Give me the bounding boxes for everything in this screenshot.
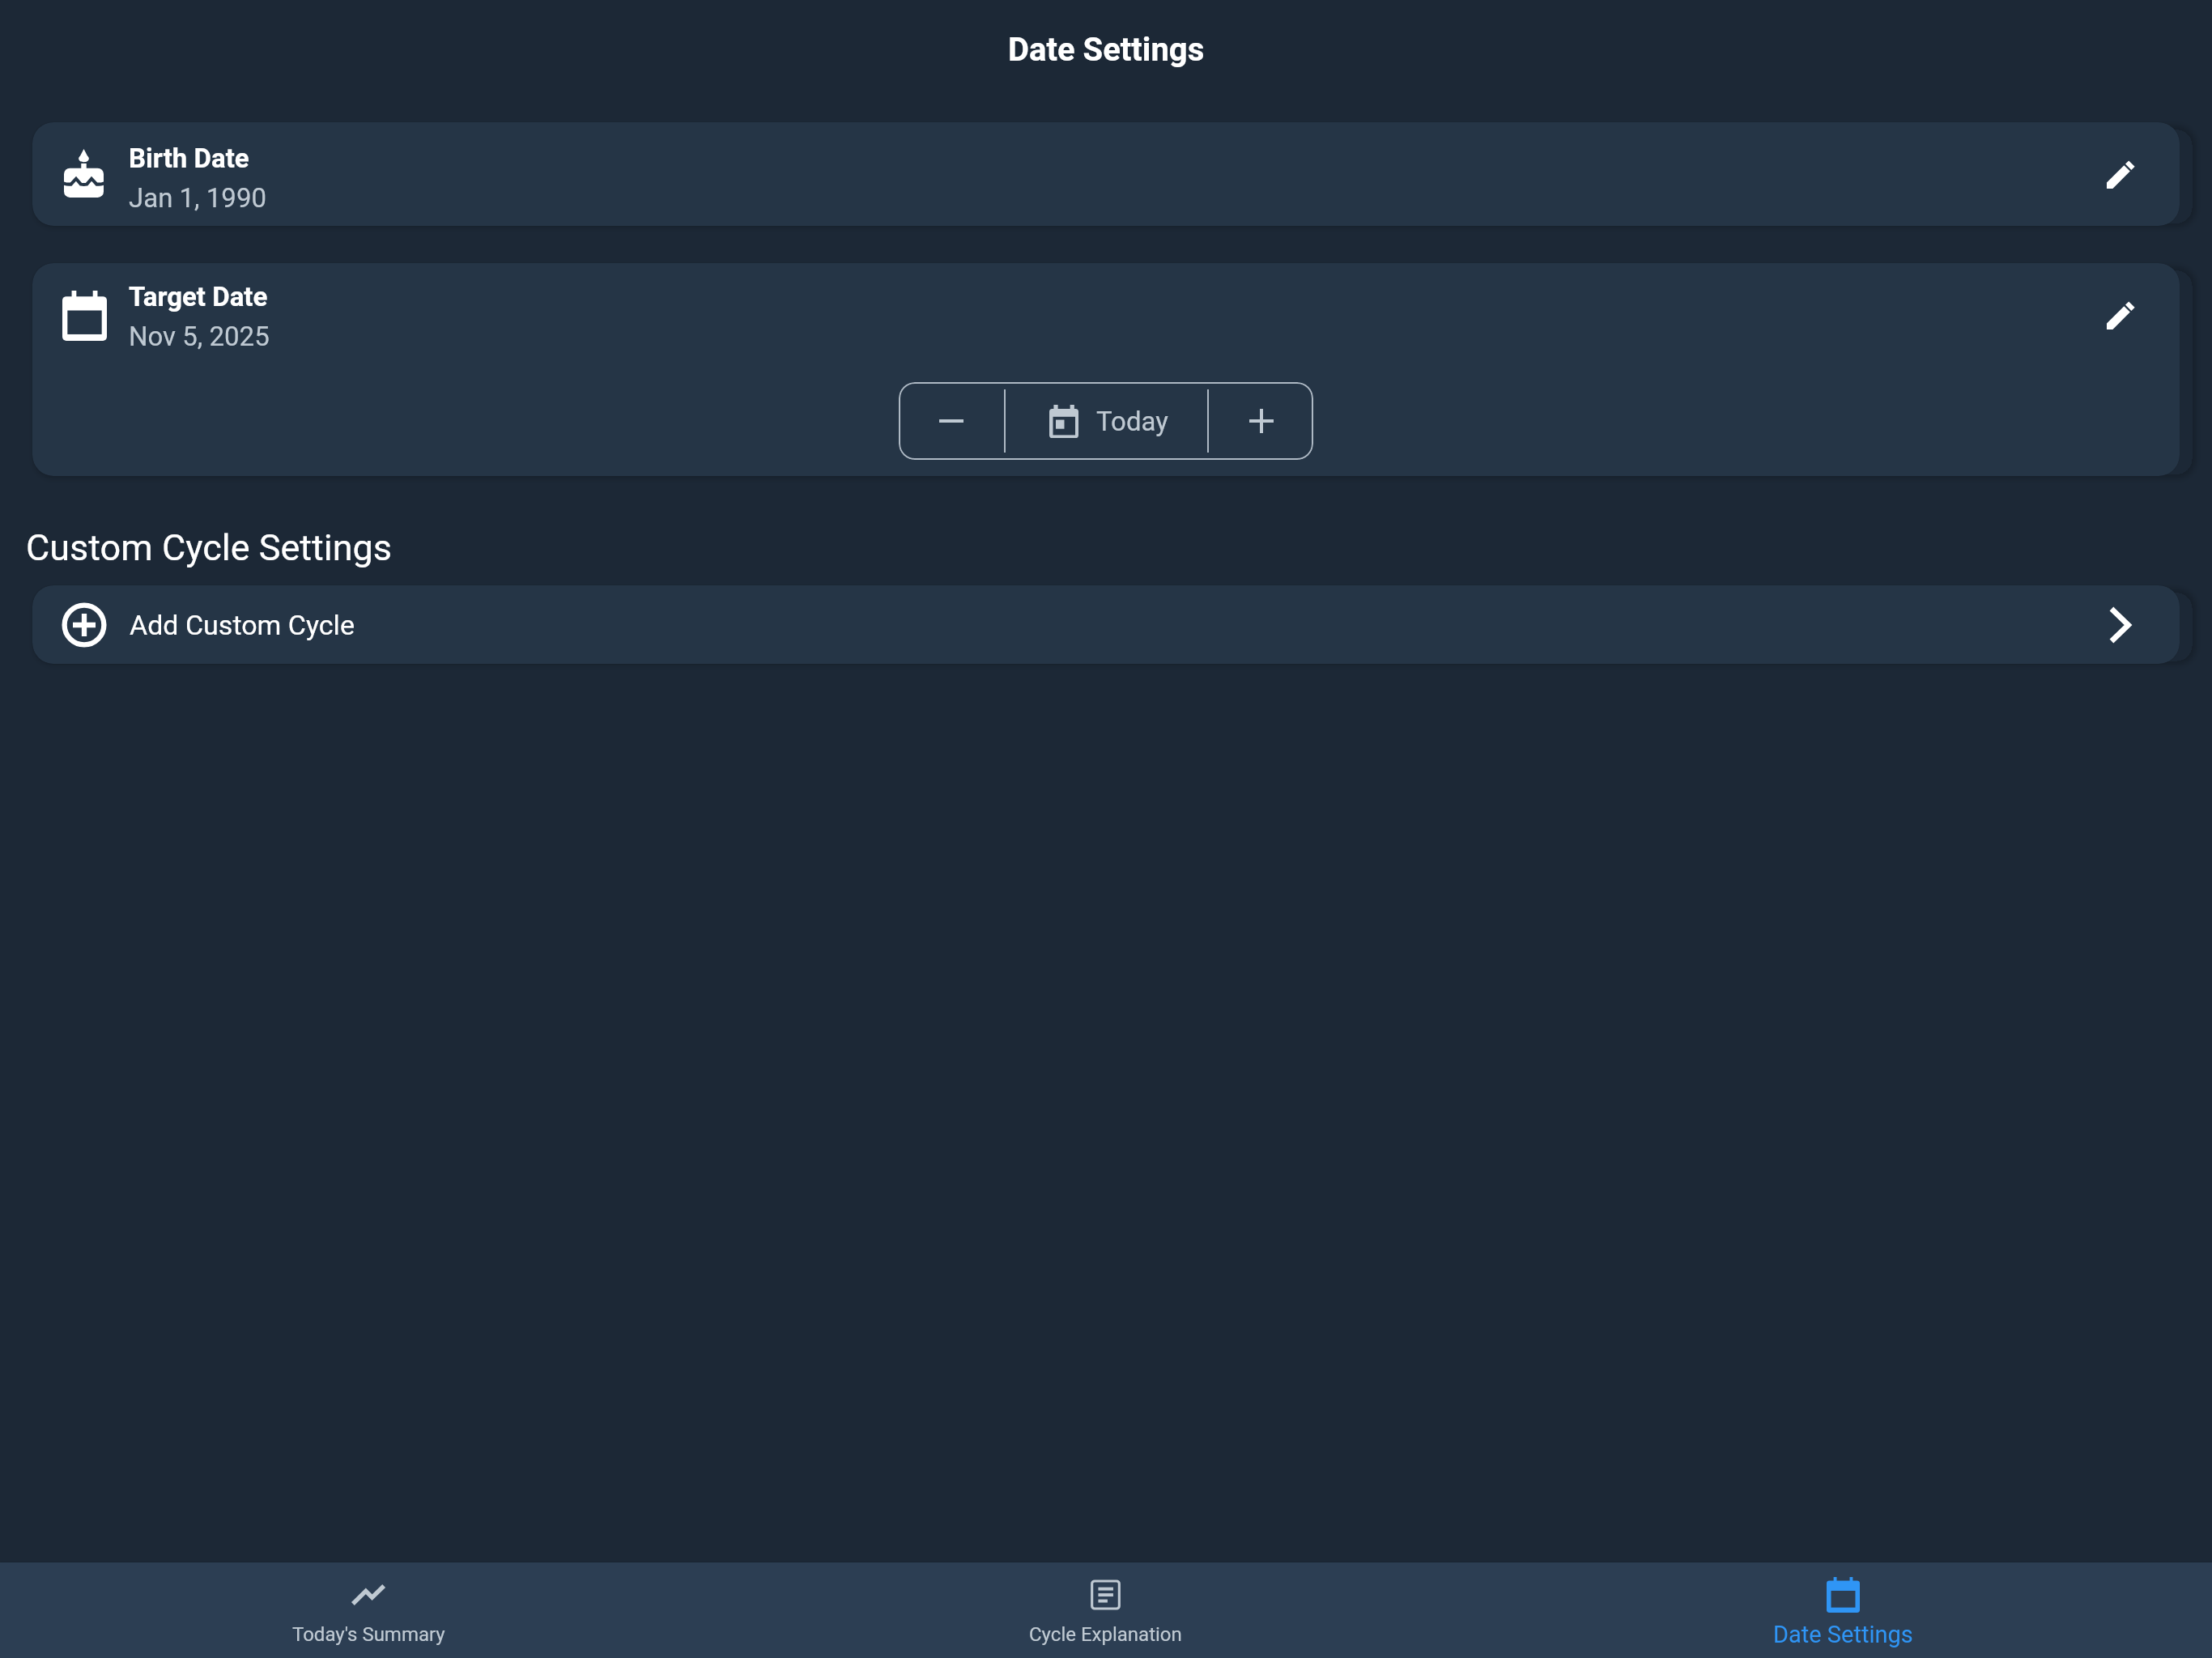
button[interactable]: Next day bbox=[1209, 382, 1313, 460]
staticText: Add Custom Cycle bbox=[130, 609, 355, 641]
staticText: Birth Date bbox=[129, 142, 249, 174]
staticText: Target Date bbox=[129, 281, 268, 312]
staticText: Cycle Explanation bbox=[1029, 1623, 1182, 1646]
button[interactable]: Add Custom Cycle bbox=[32, 585, 2180, 664]
button[interactable]: Date Settings bbox=[1474, 1562, 2212, 1658]
button[interactable]: Edit birth date bbox=[2097, 150, 2146, 198]
staticText: Today's Summary bbox=[292, 1623, 445, 1646]
button[interactable]: Birth Date bbox=[32, 122, 2180, 226]
button[interactable]: Cycle Explanation bbox=[737, 1562, 1474, 1658]
button[interactable]: Today bbox=[1006, 382, 1207, 460]
staticText: Nov 5, 2025 bbox=[129, 321, 270, 352]
staticText: Today bbox=[1096, 406, 1168, 437]
staticText: Date Settings bbox=[1773, 1621, 1913, 1648]
staticText: Custom Cycle Settings bbox=[26, 526, 393, 569]
staticText: Jan 1, 1990 bbox=[129, 182, 266, 214]
button[interactable]: Previous day bbox=[899, 382, 1004, 460]
staticText: Date Settings bbox=[1008, 31, 1205, 69]
button[interactable]: Edit target date bbox=[2097, 291, 2146, 339]
button[interactable]: Today's Summary bbox=[0, 1562, 737, 1658]
